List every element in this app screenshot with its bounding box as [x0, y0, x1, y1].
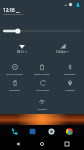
button[interactable]: Flashlight — [0, 80, 28, 94]
button[interactable]: Home — [35, 137, 49, 150]
button[interactable]: User account — [75, 2, 81, 8]
button[interactable]: Brightness — [3, 27, 81, 35]
staticText: Location — [65, 88, 75, 91]
staticText: Cellular — [56, 50, 66, 54]
staticText: Sunday, February 7 — [3, 13, 24, 16]
staticText: Flashlight — [9, 88, 20, 91]
staticText: Battery Saver — [34, 72, 50, 75]
button[interactable]: Back — [11, 137, 25, 150]
staticText: Do not disturb — [6, 72, 23, 75]
staticText: PM — [16, 10, 20, 13]
button[interactable]: Phone — [9, 126, 20, 137]
button[interactable]: Battery Saver — [28, 64, 56, 78]
staticText: Hotspot — [37, 107, 47, 110]
staticText: Wi-Fi — [17, 50, 24, 54]
staticText: Auto-rotate — [36, 88, 49, 91]
button[interactable]: Auto-rotate — [28, 80, 56, 94]
button[interactable]: Do not disturb — [0, 64, 28, 78]
staticText: 12:16 — [3, 7, 15, 13]
button[interactable]: Cellular — [42, 43, 82, 57]
staticText: Bluetooth — [64, 72, 76, 75]
button[interactable]: Recent apps — [60, 137, 74, 150]
button[interactable]: Messages — [27, 126, 38, 137]
button[interactable]: Camera — [46, 126, 57, 137]
button[interactable]: Chrome — [64, 126, 75, 137]
button[interactable]: Wi-Fi — [2, 43, 42, 57]
button[interactable]: Location — [56, 80, 84, 94]
button[interactable]: Hotspot — [28, 99, 56, 113]
button[interactable]: Bluetooth — [56, 64, 84, 78]
